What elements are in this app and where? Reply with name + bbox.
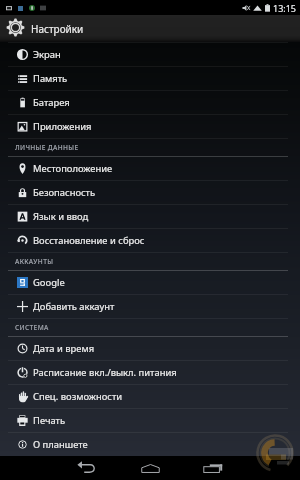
staticText: Спец. возможности [33,390,123,403]
staticText: ЛИЧНЫЕ ДАННЫЕ [15,143,79,152]
button[interactable]: Безопасность [0,181,300,205]
staticText: Приложения [33,120,92,133]
staticText: Google [33,276,65,289]
button[interactable]: Печать [0,409,300,433]
staticText: Память [33,72,68,85]
staticText: Безопасность [33,186,96,199]
staticText: О планшете [33,438,88,451]
button[interactable]: Восстановление и сброс [0,229,300,253]
button[interactable]: Спец. возможности [0,385,300,409]
staticText: Восстановление и сброс [33,234,145,247]
button[interactable]: Язык и ввод [0,205,300,229]
button[interactable]: Экран [0,43,300,67]
staticText: Дата и время [33,342,95,355]
staticText: Местоположение [33,162,113,175]
button[interactable]: Recents [183,456,243,480]
button[interactable]: Приложения [0,115,300,139]
staticText: Настройки [31,22,84,36]
staticText: АККАУНТЫ [15,257,54,266]
button[interactable]: Дата и время [0,337,300,361]
button[interactable]: Память [0,67,300,91]
button[interactable]: Расписание вкл./выкл. питания [0,361,300,385]
button[interactable]: Добавить аккаунт [0,295,300,319]
staticText: Экран [33,48,61,61]
staticText: Батарея [33,96,70,109]
button[interactable]: Настройки [0,15,300,42]
button[interactable]: Back [56,456,116,480]
staticText: Расписание вкл./выкл. питания [33,366,177,379]
staticText: 13:15 [273,2,297,14]
button[interactable]: Батарея [0,91,300,115]
button[interactable]: Home [120,456,180,480]
button[interactable]: Google [0,271,300,295]
staticText: СИСТЕМА [15,323,49,332]
staticText: Добавить аккаунт [33,300,115,313]
staticText: Язык и ввод [33,210,89,223]
staticText: Печать [33,414,66,427]
button[interactable]: Местоположение [0,157,300,181]
button[interactable]: О планшете [0,433,300,456]
